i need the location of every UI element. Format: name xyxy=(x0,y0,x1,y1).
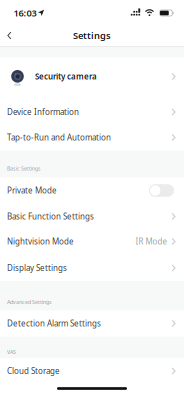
button[interactable]: Device Information xyxy=(0,99,184,125)
staticText: Advanced Settings xyxy=(7,298,52,306)
button[interactable]: Display Settings xyxy=(0,255,184,281)
staticText: Basic Function Settings xyxy=(7,211,94,222)
staticText: IR Mode xyxy=(136,236,168,247)
button[interactable]: Security camera xyxy=(0,57,184,95)
staticText: VAS xyxy=(7,348,16,356)
staticText: Device Information xyxy=(7,107,79,117)
button[interactable]: Tap-to-Run and Automation xyxy=(0,124,184,150)
button[interactable]: Basic Function Settings xyxy=(0,203,184,229)
staticText: Basic Settings xyxy=(7,165,41,172)
staticText: Security camera xyxy=(35,71,97,82)
button[interactable]: Detection Alarm Settings xyxy=(0,310,184,336)
staticText: Settings xyxy=(73,29,111,42)
staticText: Nightvision Mode xyxy=(7,236,74,247)
staticText: Detection Alarm Settings xyxy=(7,318,101,329)
staticText: Display Settings xyxy=(7,263,67,273)
button[interactable]: Back xyxy=(1,25,18,45)
staticText: 16:03 xyxy=(13,7,36,19)
staticText: Tap-to-Run and Automation xyxy=(7,132,111,143)
staticText: Cloud Storage xyxy=(7,366,60,376)
button[interactable]: Nightvision Mode xyxy=(0,228,184,254)
button[interactable]: Private Mode xyxy=(0,177,184,203)
button[interactable]: Cloud Storage xyxy=(0,358,184,384)
staticText: Private Mode xyxy=(7,185,57,196)
